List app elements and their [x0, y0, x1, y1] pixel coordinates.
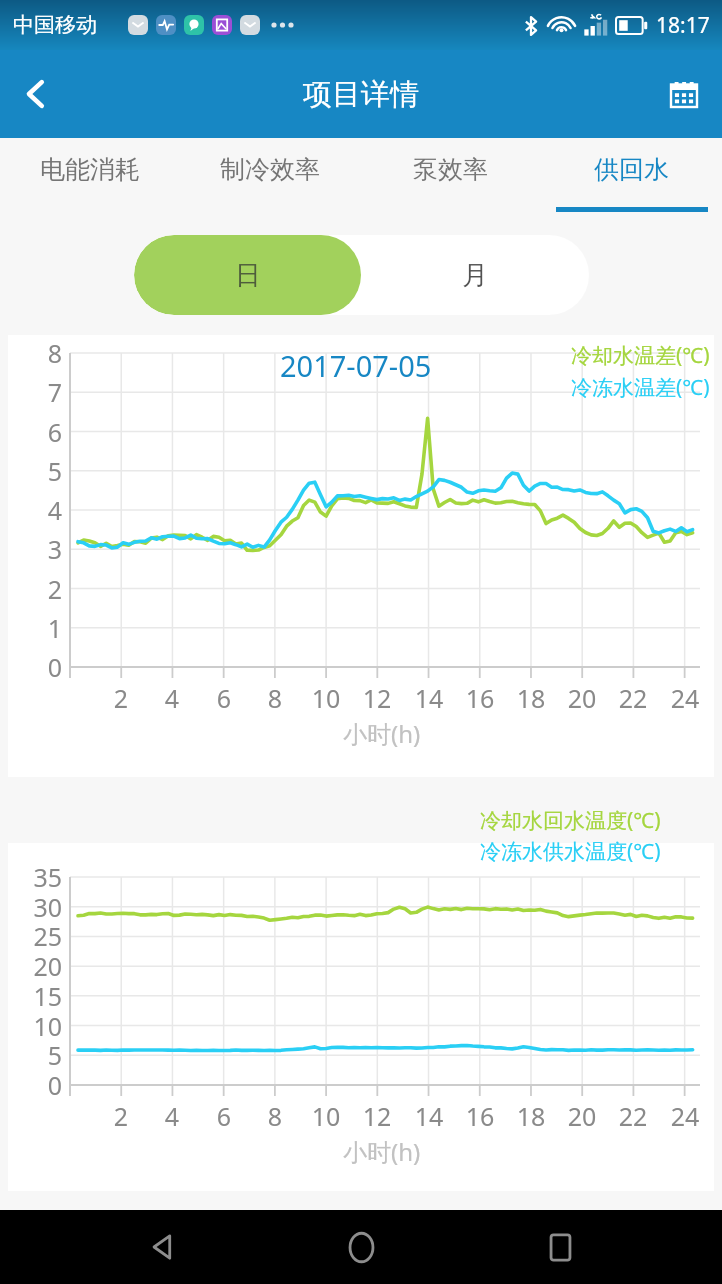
staticText: 12: [358, 1099, 396, 1133]
staticText: 7: [16, 375, 62, 409]
staticText: 22: [614, 681, 652, 715]
staticText: 2017-07-05: [280, 346, 432, 385]
staticText: 0: [16, 1068, 62, 1102]
staticText: 5: [16, 454, 62, 488]
staticText: 16: [461, 1099, 499, 1133]
button[interactable]: Home: [325, 1211, 397, 1283]
staticText: 14: [410, 1099, 448, 1133]
staticText: 中国移动: [13, 12, 97, 38]
staticText: 2: [102, 681, 140, 715]
staticText: 冷却水回水温度(℃): [480, 806, 661, 835]
staticText: 8: [256, 681, 294, 715]
staticText: 22: [614, 1099, 652, 1133]
staticText: 15: [16, 979, 62, 1013]
staticText: 25: [16, 919, 62, 953]
staticText: 4: [153, 1099, 191, 1133]
staticText: 0: [16, 650, 62, 684]
staticText: 8: [16, 336, 62, 370]
staticText: 6: [205, 1099, 243, 1133]
staticText: 冷却水温差(℃): [571, 341, 710, 370]
staticText: 2: [102, 1099, 140, 1133]
staticText: 30: [16, 890, 62, 924]
staticText: 日: [235, 259, 261, 292]
staticText: 20: [563, 1099, 601, 1133]
staticText: 14: [410, 681, 448, 715]
staticText: 12: [358, 681, 396, 715]
staticText: 8: [256, 1099, 294, 1133]
staticText: 1: [16, 611, 62, 645]
staticText: 20: [563, 681, 601, 715]
button[interactable]: Recent apps: [524, 1211, 596, 1283]
staticText: 6: [205, 681, 243, 715]
staticText: 制冷效率: [220, 154, 320, 185]
staticText: 18: [512, 681, 550, 715]
staticText: 10: [307, 1099, 345, 1133]
staticText: 20: [16, 949, 62, 983]
staticText: 冷冻水温差(℃): [571, 373, 710, 402]
staticText: 10: [307, 681, 345, 715]
button[interactable]: 泵效率: [360, 138, 541, 220]
staticText: 16: [461, 681, 499, 715]
staticText: 24: [666, 681, 704, 715]
button[interactable]: Calendar: [656, 66, 712, 122]
button[interactable]: 日: [134, 235, 361, 315]
staticText: 10: [16, 1009, 62, 1043]
staticText: 2: [16, 572, 62, 606]
staticText: 24: [666, 1099, 704, 1133]
staticText: 18:17: [656, 11, 710, 40]
staticText: 4: [16, 493, 62, 527]
button[interactable]: Back: [127, 1211, 199, 1283]
staticText: 3: [16, 532, 62, 566]
staticText: 5: [16, 1038, 62, 1072]
staticText: 18: [512, 1099, 550, 1133]
button[interactable]: 月: [361, 235, 589, 315]
staticText: 35: [16, 860, 62, 894]
staticText: 供回水: [594, 154, 669, 185]
staticText: 小时(h): [343, 1135, 421, 1168]
button[interactable]: Back: [6, 64, 66, 124]
staticText: 6: [16, 415, 62, 449]
staticText: 月: [462, 259, 488, 292]
button[interactable]: 电能消耗: [0, 138, 180, 220]
staticText: 电能消耗: [40, 154, 140, 185]
staticText: 小时(h): [343, 717, 421, 750]
button[interactable]: 供回水: [541, 138, 722, 220]
staticText: 泵效率: [413, 154, 488, 185]
button[interactable]: 制冷效率: [180, 138, 360, 220]
staticText: 冷冻水供水温度(℃): [480, 837, 661, 866]
staticText: 项目详情: [303, 76, 419, 113]
staticText: 4: [153, 681, 191, 715]
